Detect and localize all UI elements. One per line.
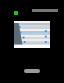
- button[interactable]: [24, 69, 40, 73]
- button[interactable]: App icon: [14, 11, 18, 15]
